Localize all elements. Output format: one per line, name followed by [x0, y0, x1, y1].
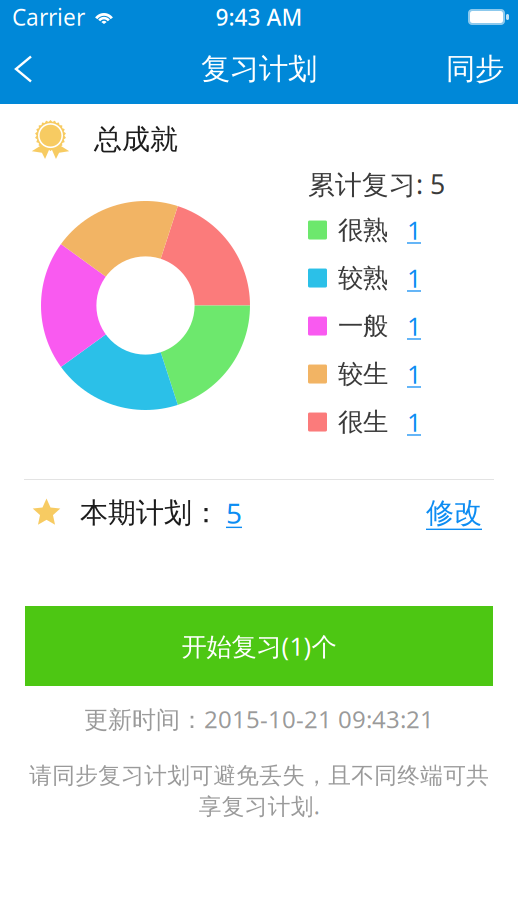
button[interactable]: 5: [220, 490, 248, 536]
staticText: 更新时间：2015-10-21 09:43:21: [84, 703, 434, 735]
staticText: 1: [407, 405, 421, 439]
staticText: 1: [407, 213, 421, 247]
staticText: 开始复习(1)个: [181, 629, 336, 663]
staticText: 1: [407, 309, 421, 343]
staticText: 请同步复习计划可避免丢失，且不同终端可共享复习计划.: [29, 762, 489, 821]
staticText: 1: [407, 261, 421, 295]
staticText: 较生: [338, 358, 388, 389]
staticText: 一般: [338, 310, 388, 341]
staticText: 5: [226, 494, 242, 532]
button[interactable]: 同步: [432, 39, 518, 99]
staticText: 较熟: [338, 262, 388, 293]
staticText: 很生: [338, 406, 388, 437]
button[interactable]: 1: [388, 399, 425, 445]
button[interactable]: Back: [0, 39, 56, 99]
button[interactable]: 1: [388, 351, 425, 397]
button[interactable]: 修改: [420, 490, 488, 536]
staticText: 本期计划：: [80, 496, 220, 530]
staticText: 总成就: [94, 122, 178, 157]
staticText: 1: [407, 357, 421, 391]
staticText: 同步: [446, 51, 504, 87]
button[interactable]: 1: [388, 255, 425, 301]
staticText: Carrier: [12, 2, 85, 32]
staticText: 修改: [426, 496, 482, 530]
button[interactable]: 1: [388, 207, 425, 253]
button[interactable]: 开始复习(1)个: [25, 606, 493, 686]
button[interactable]: 1: [388, 303, 425, 349]
staticText: 复习计划: [201, 51, 317, 87]
staticText: 累计复习: 5: [308, 166, 445, 202]
staticText: 9:43 AM: [215, 2, 302, 32]
staticText: 很熟: [338, 214, 388, 245]
